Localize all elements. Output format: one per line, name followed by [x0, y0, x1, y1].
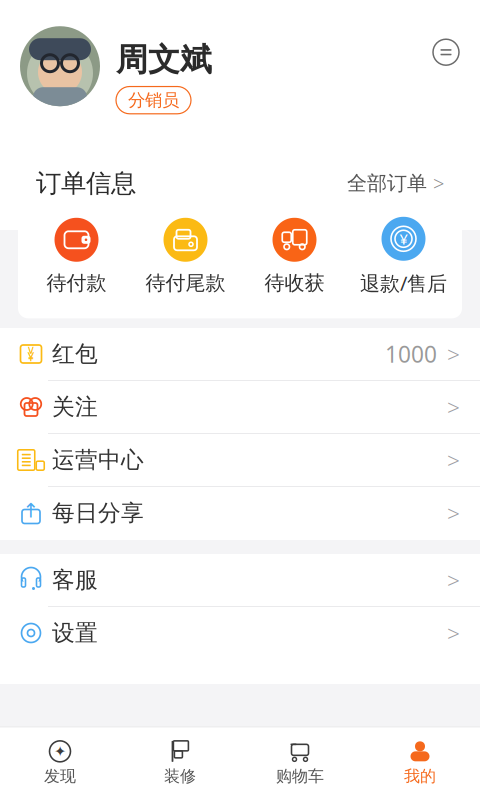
- staticText: ∨: [26, 343, 35, 356]
- staticText: ↑: [22, 499, 39, 522]
- staticText: ✦: [54, 743, 66, 760]
- button[interactable]: 待收获: [240, 216, 349, 297]
- staticText: 运营中心: [52, 446, 144, 474]
- button[interactable]: 全部订单: [347, 170, 444, 196]
- button[interactable]: ↑: [0, 487, 480, 540]
- staticText: 我的: [404, 766, 436, 786]
- staticText: 订单信息: [36, 168, 136, 199]
- button[interactable]: 待付尾款: [131, 216, 240, 297]
- staticText: 装修: [164, 766, 196, 786]
- button[interactable]: 客服: [0, 554, 480, 607]
- button[interactable]: 待付款: [22, 216, 131, 297]
- staticText: >: [447, 339, 460, 369]
- staticText: 发现: [44, 766, 76, 786]
- button[interactable]: 购物车: [240, 733, 360, 792]
- staticText: ¥: [27, 348, 34, 364]
- staticText: 退款/售后: [360, 270, 447, 296]
- staticText: 分销员: [128, 89, 179, 111]
- button[interactable]: ¥: [349, 215, 458, 298]
- staticText: 周文斌: [116, 40, 212, 79]
- staticText: >: [447, 445, 460, 475]
- button[interactable]: Messages: [430, 26, 480, 68]
- staticText: 设置: [52, 619, 98, 647]
- staticText: 1000: [385, 339, 437, 369]
- staticText: 客服: [52, 566, 98, 594]
- staticText: 每日分享: [52, 499, 144, 527]
- staticText: 全部订单: [347, 171, 427, 195]
- staticText: 待收获: [264, 271, 324, 295]
- staticText: >: [447, 565, 460, 595]
- button[interactable]: Profile photo: [0, 26, 100, 106]
- staticText: 购物车: [276, 766, 324, 786]
- staticText: 关注: [52, 393, 98, 421]
- button[interactable]: 分销员: [116, 86, 191, 114]
- staticText: >: [433, 170, 444, 196]
- button[interactable]: 运营中心: [0, 434, 480, 487]
- button[interactable]: 关注: [0, 381, 480, 434]
- button[interactable]: ¥: [0, 328, 480, 381]
- staticText: >: [447, 392, 460, 422]
- staticText: 待付款: [46, 271, 106, 295]
- button[interactable]: 设置: [0, 607, 480, 660]
- staticText: ¥: [399, 229, 407, 248]
- staticText: >: [447, 498, 460, 528]
- button[interactable]: 我的: [360, 733, 480, 792]
- button[interactable]: 装修: [120, 733, 240, 792]
- staticText: 待付尾款: [145, 271, 225, 295]
- button[interactable]: ✦: [0, 733, 120, 792]
- staticText: >: [447, 618, 460, 648]
- staticText: 红包: [52, 340, 98, 368]
